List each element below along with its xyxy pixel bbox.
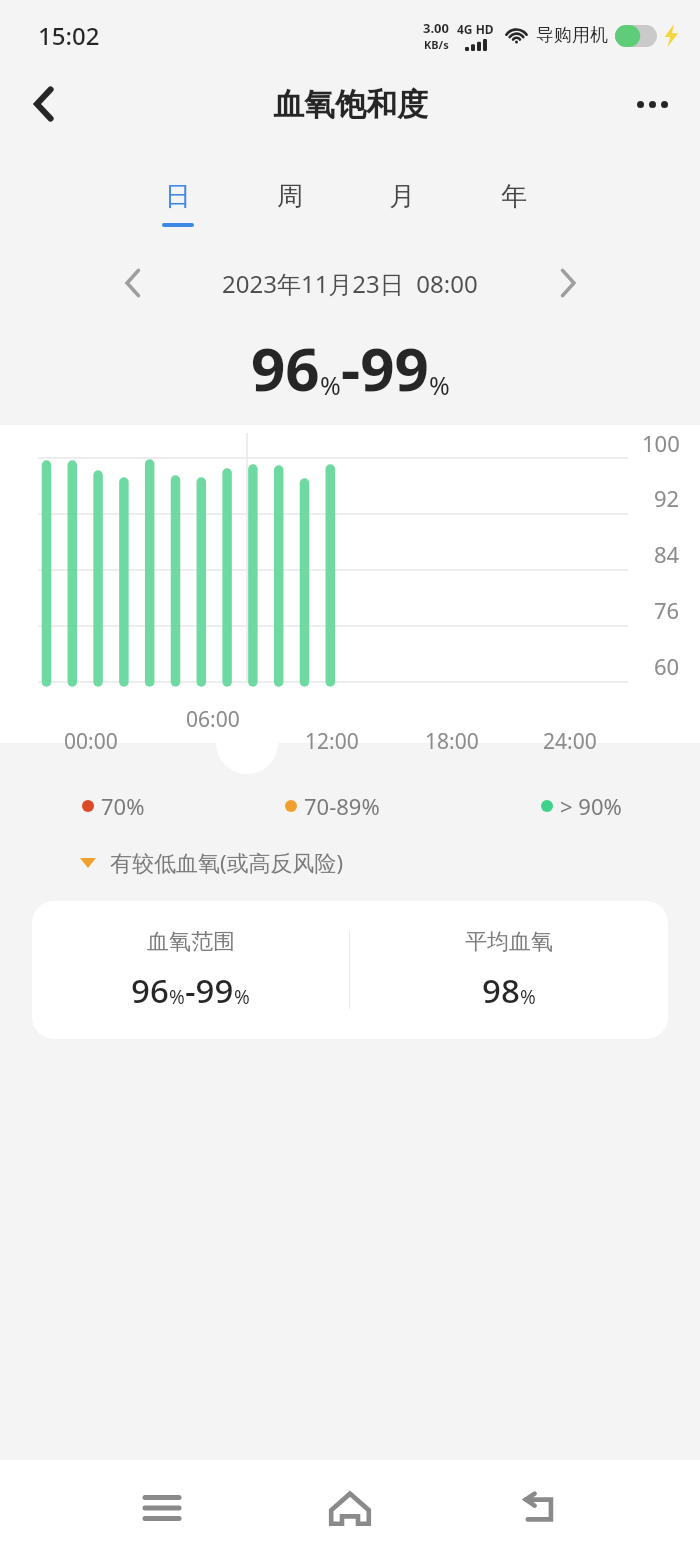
staticText: 70-89% bbox=[304, 791, 380, 821]
staticText: 日 bbox=[165, 180, 191, 213]
staticText: 平均血氧 bbox=[465, 928, 553, 956]
staticText: 15:02 bbox=[38, 19, 100, 52]
button[interactable]: 血氧范围 bbox=[32, 901, 668, 1039]
staticText: 血氧范围 bbox=[147, 928, 235, 956]
button[interactable]: Home bbox=[316, 1474, 384, 1542]
staticText: 3.00 bbox=[423, 19, 449, 37]
staticText: 96 bbox=[251, 327, 320, 409]
staticText: % bbox=[169, 984, 185, 1010]
staticText: 12:00 bbox=[305, 727, 359, 755]
button[interactable]: Previous bbox=[108, 259, 156, 307]
staticText: > 90% bbox=[560, 791, 622, 821]
staticText: 4G HD bbox=[457, 21, 494, 37]
button[interactable]: More options bbox=[622, 74, 682, 134]
staticText: % bbox=[320, 368, 341, 402]
staticText: % bbox=[234, 984, 250, 1010]
staticText: 98 bbox=[482, 968, 520, 1013]
staticText: 导购用机 bbox=[536, 24, 608, 47]
staticText: 月 bbox=[389, 180, 415, 213]
staticText: 周 bbox=[277, 180, 303, 213]
button[interactable]: Back bbox=[504, 1474, 572, 1542]
staticText: 92 bbox=[654, 483, 680, 513]
staticText: 96 bbox=[131, 968, 169, 1013]
staticText: 84 bbox=[654, 539, 680, 569]
staticText: 年 bbox=[501, 180, 527, 213]
button[interactable]: Back bbox=[12, 72, 76, 136]
staticText: -99 bbox=[341, 327, 429, 409]
staticText: 24:00 bbox=[543, 727, 597, 755]
button[interactable]: Next bbox=[544, 259, 592, 307]
button[interactable]: Recents bbox=[128, 1474, 196, 1542]
staticText: % bbox=[520, 984, 536, 1010]
staticText: 60 bbox=[654, 651, 680, 681]
staticText: 06:00 bbox=[186, 705, 240, 734]
button[interactable]: 日 bbox=[122, 180, 234, 227]
button[interactable]: 周 bbox=[234, 180, 346, 227]
staticText: KB/s bbox=[424, 37, 449, 52]
staticText: 血氧饱和度 bbox=[273, 85, 428, 124]
staticText: 70% bbox=[101, 791, 145, 821]
staticText: 76 bbox=[654, 595, 680, 625]
staticText: 18:00 bbox=[425, 727, 479, 755]
staticText: % bbox=[429, 368, 450, 402]
staticText: -99 bbox=[185, 968, 234, 1013]
staticText: 00:00 bbox=[64, 727, 118, 755]
staticText: 2023年11月23日 08:00 bbox=[222, 267, 478, 300]
button[interactable]: 月 bbox=[346, 180, 458, 227]
button[interactable]: 年 bbox=[458, 180, 570, 227]
staticText: 有较低血氧(或高反风险) bbox=[110, 847, 344, 877]
staticText: 100 bbox=[642, 428, 680, 458]
